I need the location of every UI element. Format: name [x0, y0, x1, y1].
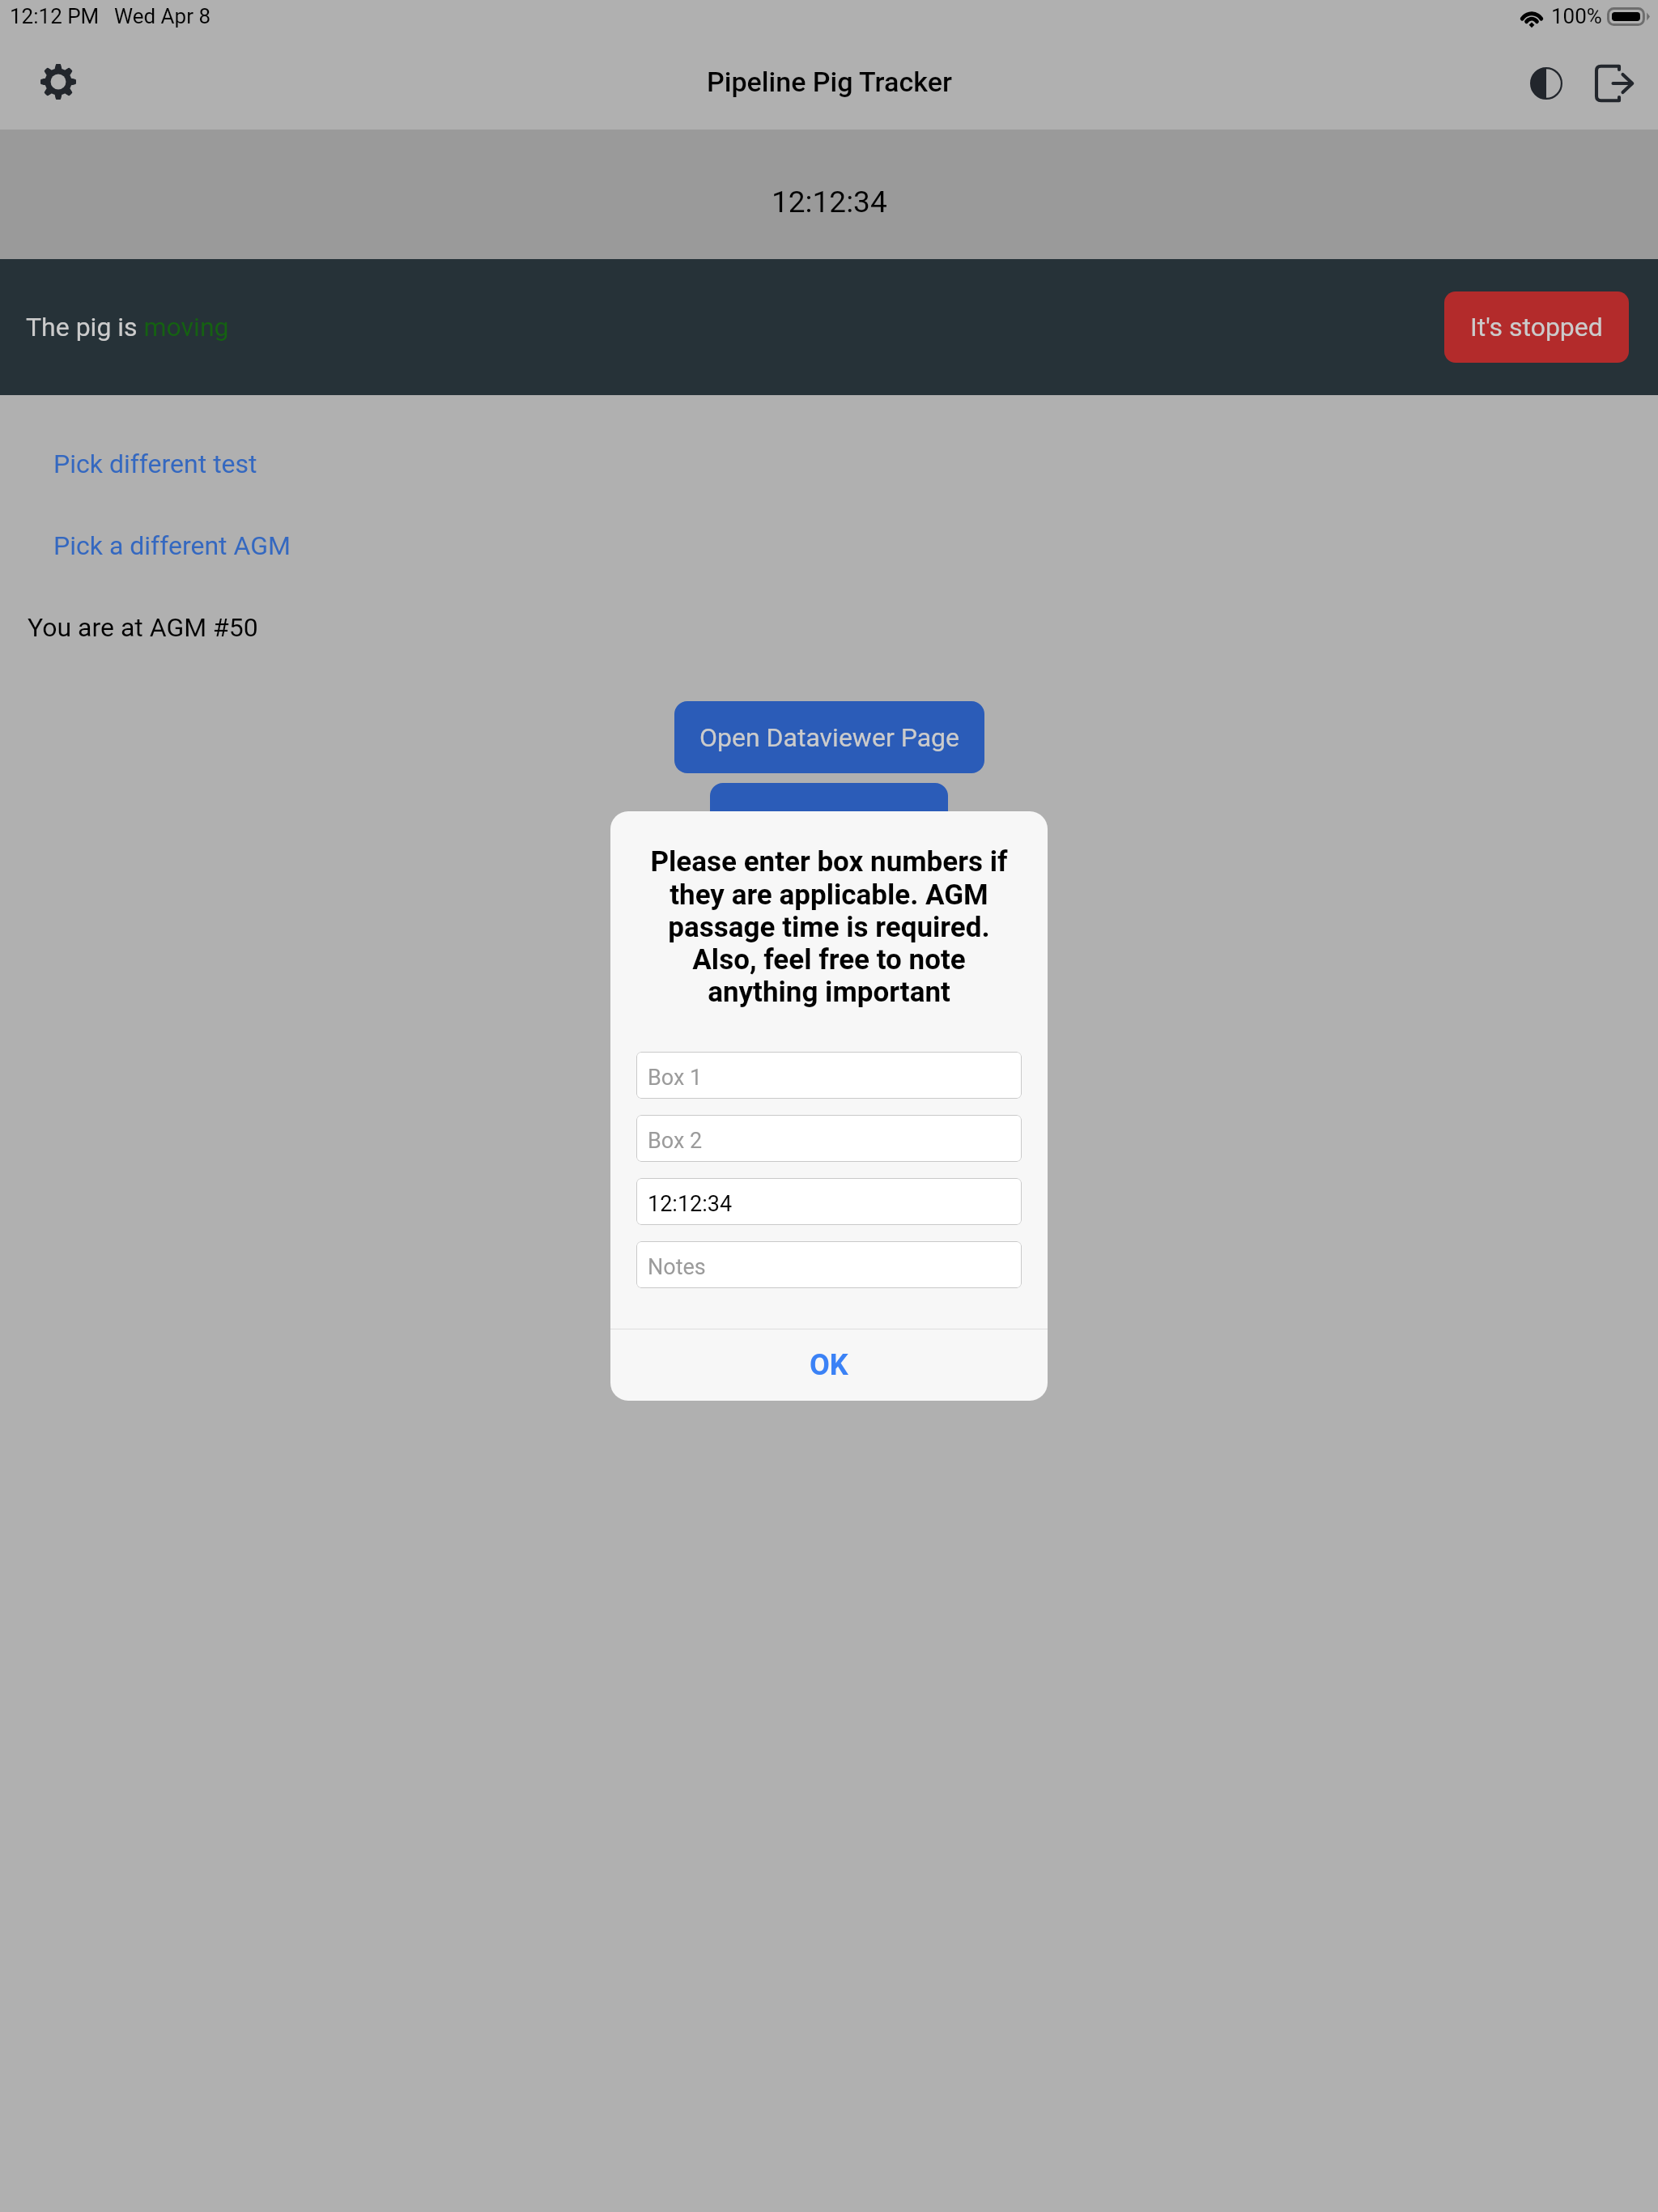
staticText: Box 2 — [648, 1128, 703, 1154]
staticText: Pick a different AGM — [53, 530, 291, 561]
button[interactable]: Open Dataviewer Page — [674, 701, 984, 773]
staticText: Pipeline Pig Tracker — [707, 66, 952, 98]
button[interactable]: OK — [610, 1329, 1048, 1401]
button[interactable]: Pick different test — [40, 444, 270, 484]
button[interactable]: It's stopped — [1444, 291, 1629, 363]
button[interactable]: Open Map Page — [710, 783, 948, 855]
staticText: 12:12 PM — [10, 4, 100, 28]
staticText: You are at AGM #50 — [28, 612, 258, 643]
staticText: Open Dataviewer Page — [699, 722, 960, 753]
staticText: Wed Apr 8 — [114, 4, 211, 28]
staticText: 100% — [1551, 4, 1602, 28]
button[interactable]: Settings — [23, 46, 94, 117]
staticText: Pick different test — [53, 449, 257, 479]
button[interactable]: 12:12:34 — [636, 1178, 1022, 1225]
button[interactable]: Notes — [636, 1241, 1022, 1288]
staticText: OK — [810, 1348, 848, 1382]
staticText: Open Map Page — [738, 810, 921, 841]
button[interactable]: Pick a different AGM — [40, 525, 304, 566]
button[interactable]: Log out — [1580, 49, 1648, 117]
staticText: 12:12:34 — [772, 185, 887, 219]
staticText: The pig is moving — [26, 312, 229, 342]
button[interactable]: Toggle contrast — [1512, 49, 1580, 117]
staticText: Please enter box numbers if they are app… — [646, 845, 1012, 1008]
staticText: 12:12:34 — [648, 1191, 733, 1217]
staticText: Box 1 — [648, 1065, 703, 1091]
button[interactable]: Box 1 — [636, 1052, 1022, 1099]
staticText: It's stopped — [1470, 312, 1603, 342]
staticText: Notes — [648, 1254, 706, 1280]
button[interactable]: Box 2 — [636, 1115, 1022, 1162]
